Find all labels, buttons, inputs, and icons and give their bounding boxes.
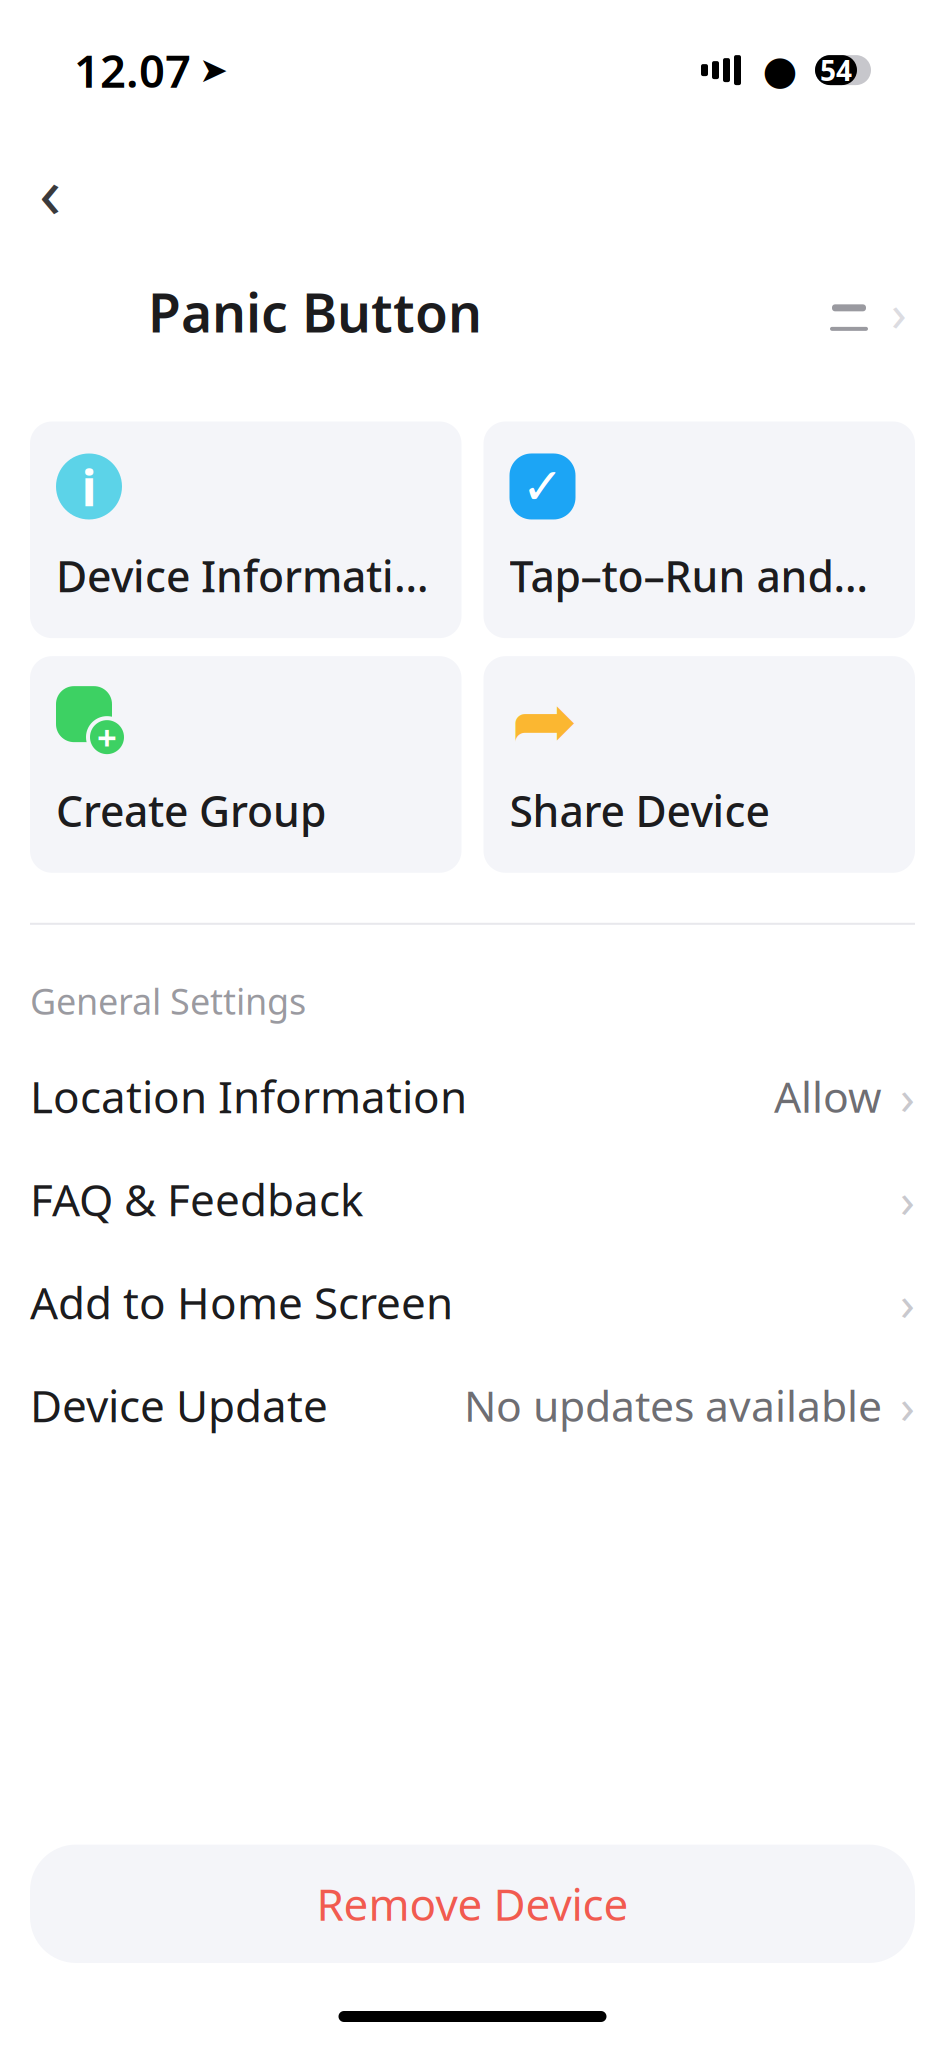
staticText: ✓	[521, 458, 563, 515]
staticText: ➤	[199, 50, 228, 90]
staticText: ›	[891, 278, 907, 345]
staticText: ›	[900, 1270, 915, 1334]
staticText: ›	[900, 1064, 915, 1128]
staticText: 54	[820, 51, 852, 89]
staticText: +	[97, 714, 117, 760]
staticText: ›	[900, 1167, 915, 1231]
staticText: Allow	[774, 1068, 882, 1124]
staticText: FAQ & Feedback	[30, 1170, 363, 1228]
staticText: ›	[900, 1373, 915, 1437]
button[interactable]: ➦	[483, 656, 915, 873]
button[interactable]: FAQ & Feedback	[0, 1148, 945, 1251]
staticText: Remove Device	[316, 1875, 628, 1933]
button[interactable]: Location Information	[0, 1045, 945, 1148]
button[interactable]: i	[30, 421, 461, 638]
button[interactable]: Rename device	[819, 270, 917, 353]
staticText: No updates available	[464, 1377, 882, 1433]
button[interactable]: +	[30, 656, 461, 873]
staticText: General Settings	[30, 977, 306, 1025]
staticText: ●	[762, 47, 797, 93]
staticText: Device Informati…	[56, 547, 429, 604]
staticText: Tap–to–Run and…	[509, 547, 868, 604]
staticText: Create Group	[56, 782, 326, 839]
staticText: ‹	[39, 142, 61, 238]
button[interactable]: ✓	[483, 421, 915, 638]
button[interactable]: Device Update	[0, 1354, 945, 1457]
button[interactable]: Back	[18, 158, 82, 222]
staticText: Share Device	[509, 782, 769, 839]
staticText: Device Update	[30, 1376, 328, 1434]
button[interactable]: Add to Home Screen	[0, 1251, 945, 1354]
staticText: i	[81, 453, 96, 520]
button[interactable]: Remove Device	[30, 1845, 915, 1963]
staticText: Location Information	[30, 1067, 467, 1125]
staticText: Add to Home Screen	[30, 1273, 453, 1331]
staticText: ➦	[511, 676, 578, 766]
staticText: 12.07	[74, 40, 191, 100]
staticText: Panic Button	[148, 276, 482, 347]
